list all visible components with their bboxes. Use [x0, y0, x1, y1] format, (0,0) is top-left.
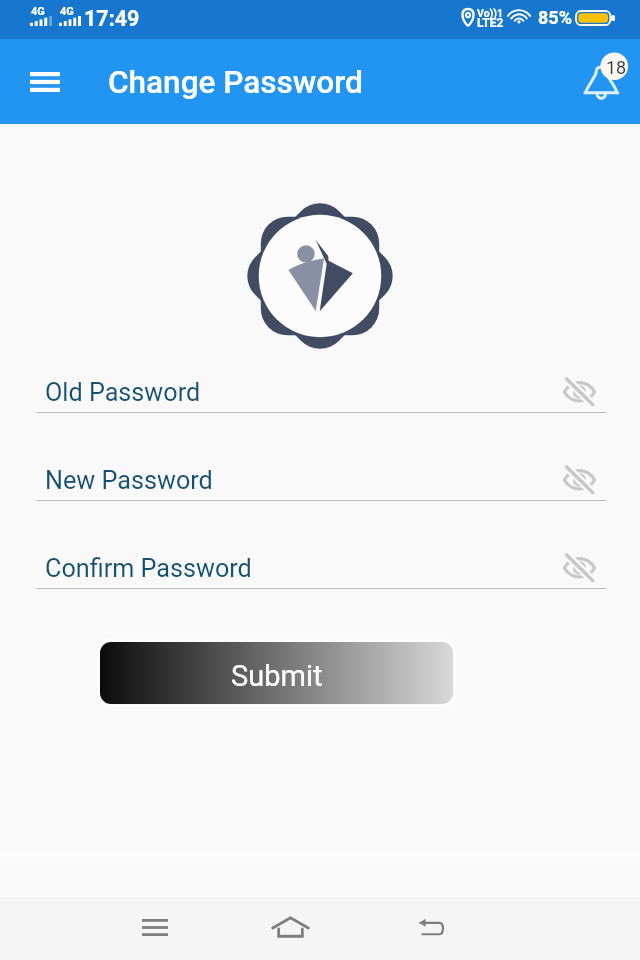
staticText: 17:49 — [84, 6, 140, 31]
staticText: Confirm Password — [45, 554, 252, 584]
button[interactable]: Recent apps — [120, 897, 190, 957]
button[interactable]: Home — [255, 897, 325, 957]
button[interactable]: Back — [395, 897, 465, 957]
staticText: 4G — [31, 5, 45, 18]
staticText: 85% — [538, 7, 572, 28]
button[interactable]: Notifications, 18 new — [573, 48, 637, 112]
button[interactable]: Show New Password — [556, 458, 602, 500]
button[interactable]: Old Password — [0, 368, 640, 413]
staticText: LTE2 — [477, 16, 504, 30]
button[interactable]: Open navigation menu — [17, 59, 73, 105]
button[interactable]: New Password — [0, 456, 640, 501]
staticText: Change Password — [108, 64, 363, 101]
staticText: 4G — [60, 5, 74, 18]
staticText: Old Password — [45, 378, 201, 408]
staticText: Vo))1 — [477, 7, 503, 19]
button[interactable]: Submit — [100, 642, 453, 704]
button[interactable]: Confirm Password — [0, 544, 640, 589]
button[interactable]: Show Old Password — [556, 370, 602, 412]
button[interactable]: Show Confirm Password — [556, 546, 602, 588]
staticText: New Password — [45, 466, 213, 496]
staticText: Submit — [231, 659, 323, 693]
staticText: 18 — [602, 57, 630, 78]
